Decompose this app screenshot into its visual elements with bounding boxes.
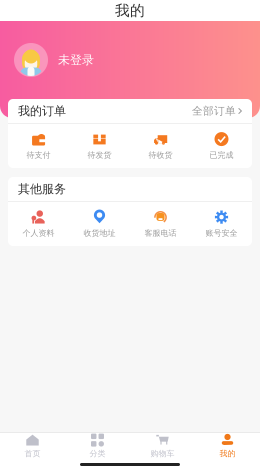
staticText: 我的 [219, 449, 235, 458]
staticText: 待收货 [148, 150, 172, 160]
staticText: 收货地址 [83, 228, 115, 238]
staticText: 客服电话 [144, 228, 176, 238]
staticText: 个人资料 [22, 228, 54, 238]
staticText: 已完成 [209, 150, 233, 160]
staticText: 我的 [115, 1, 145, 19]
button[interactable]: 首页 [0, 433, 65, 459]
button[interactable]: 收货地址 [69, 202, 130, 246]
button[interactable]: 待收货 [130, 124, 191, 168]
staticText: 其他服务 [18, 182, 66, 196]
button[interactable]: 全部订单 [192, 104, 242, 117]
button[interactable]: 待支付 [8, 124, 69, 168]
button[interactable]: 客服电话 [130, 202, 191, 246]
staticText: 首页 [24, 449, 40, 458]
staticText: 待支付 [26, 150, 50, 160]
staticText: 待发货 [87, 150, 111, 160]
staticText: 未登录 [58, 53, 94, 67]
staticText: 分类 [89, 449, 105, 458]
button[interactable]: 已完成 [191, 124, 252, 168]
button[interactable]: 购物车 [130, 433, 195, 459]
button[interactable]: 待发货 [69, 124, 130, 168]
button[interactable]: 账号安全 [191, 202, 252, 246]
button[interactable]: 未登录 [0, 21, 260, 99]
staticText: 全部订单 [192, 104, 236, 117]
staticText: 账号安全 [205, 228, 237, 238]
button[interactable]: 个人资料 [8, 202, 69, 246]
staticText: 购物车 [150, 449, 174, 458]
button[interactable]: 我的 [195, 433, 260, 459]
staticText: 我的订单 [18, 104, 66, 118]
button[interactable]: 分类 [65, 433, 130, 459]
